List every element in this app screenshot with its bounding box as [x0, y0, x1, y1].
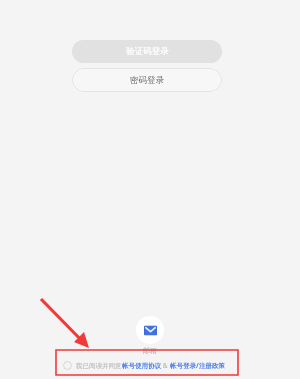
staticText: &: [161, 361, 170, 370]
button[interactable]: 密码登录: [72, 68, 222, 92]
button[interactable]: 帐号使用协议: [122, 362, 161, 370]
other: 同意协议: [63, 361, 72, 370]
button[interactable]: 邮箱登录: [136, 316, 164, 344]
button[interactable]: 帐号登录/注册政策: [170, 361, 225, 370]
staticText: 验证码登录: [126, 46, 169, 57]
staticText: 邮箱: [143, 346, 157, 355]
staticText: 我已阅读并同意: [76, 362, 122, 370]
button[interactable]: 同意协议: [63, 357, 225, 374]
button[interactable]: 验证码登录: [72, 40, 222, 63]
staticText: 密码登录: [130, 75, 164, 86]
